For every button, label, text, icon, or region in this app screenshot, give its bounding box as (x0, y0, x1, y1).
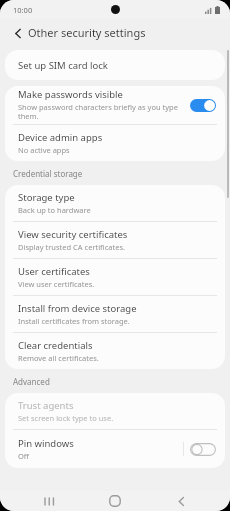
button[interactable]: View security certificates (5, 222, 225, 258)
button[interactable]: Set up SIM card lock (5, 50, 225, 80)
button[interactable]: Toggle off (190, 442, 216, 457)
staticText: Install certificates from storage. (18, 316, 130, 326)
staticText: Set up SIM card lock (18, 59, 108, 72)
button[interactable]: Home (98, 491, 132, 511)
staticText: Make passwords visible (18, 88, 123, 101)
button[interactable]: Make passwords visible (5, 86, 225, 124)
staticText: Trust agents (18, 399, 74, 412)
button[interactable]: Install from device storage (5, 296, 225, 332)
button[interactable]: Trust agents (5, 393, 225, 429)
staticText: Storage type (18, 191, 75, 204)
staticText: Other security settings (28, 25, 146, 40)
button[interactable]: Device admin apps (5, 125, 225, 161)
button[interactable]: Pin windows (5, 430, 225, 468)
button[interactable]: Storage type (5, 185, 225, 221)
staticText: Set screen lock type to use. (18, 413, 114, 423)
staticText: Remove all certificates. (18, 353, 99, 363)
staticText: No active apps (18, 145, 70, 155)
button[interactable]: Recent apps (32, 491, 66, 511)
staticText: View security certificates (18, 228, 128, 241)
button[interactable]: User certificates (5, 259, 225, 295)
button[interactable]: Back (8, 23, 28, 43)
staticText: Credential storage (13, 168, 83, 179)
staticText: Pin windows (18, 437, 74, 450)
staticText: Advanced (13, 376, 50, 387)
staticText: Device admin apps (18, 131, 103, 144)
staticText: 10:00 (13, 5, 33, 15)
staticText: View user certificates. (18, 279, 95, 289)
staticText: User certificates (18, 265, 90, 278)
button[interactable]: Toggle on (190, 98, 216, 113)
staticText: Back up to hardware (18, 205, 91, 215)
button[interactable]: Back (164, 491, 198, 511)
staticText: Off (18, 451, 30, 461)
staticText: Display trusted CA certificates. (18, 242, 125, 252)
staticText: Clear credentials (18, 339, 93, 352)
staticText: Install from device storage (18, 302, 137, 315)
staticText: Show password characters briefly as you … (18, 102, 190, 122)
button[interactable]: Clear credentials (5, 333, 225, 369)
